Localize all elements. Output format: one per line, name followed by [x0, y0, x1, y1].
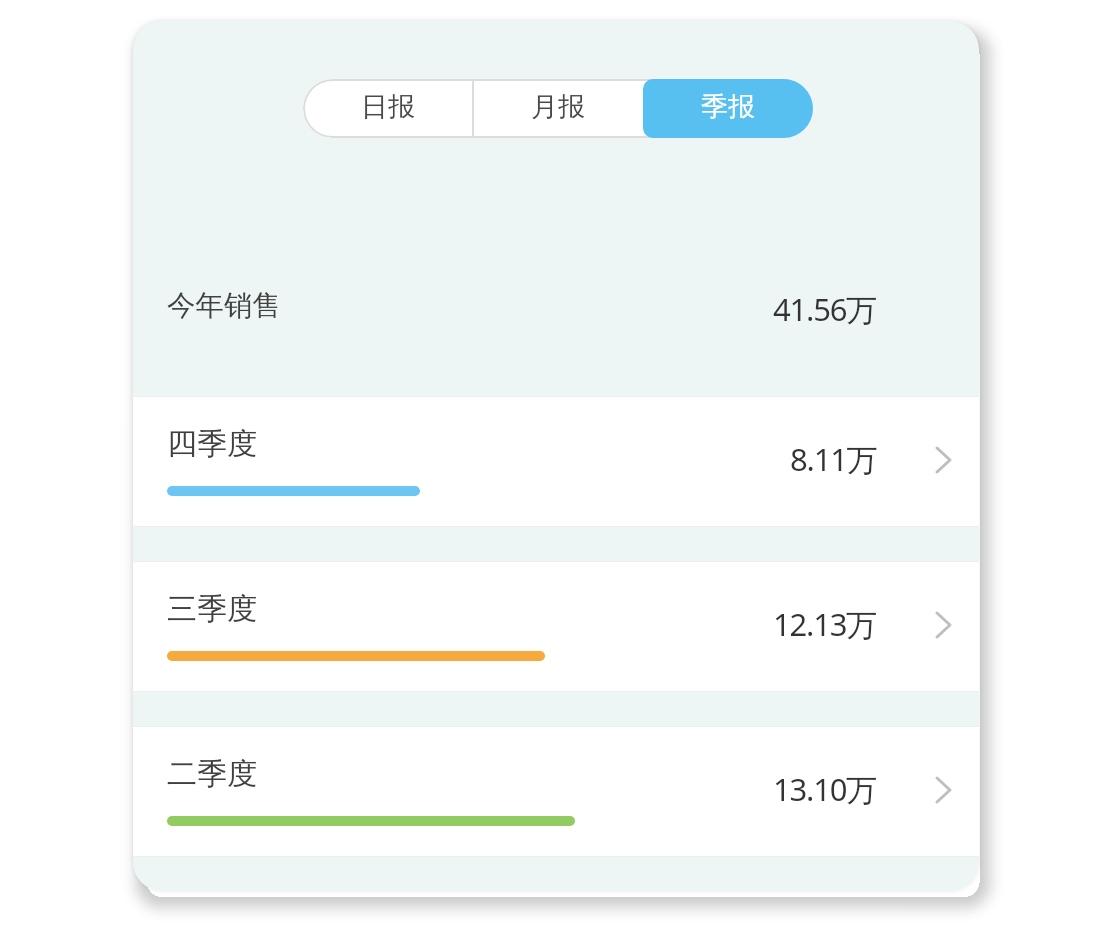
staticText: 41.56万	[773, 288, 877, 330]
button[interactable]: 四季度	[133, 396, 979, 527]
staticText: 四季度	[167, 425, 257, 463]
staticText: 二季度	[167, 755, 257, 793]
staticText: 日报	[361, 90, 415, 124]
staticText: 今年销售	[167, 288, 281, 324]
button[interactable]: 三季度	[133, 561, 979, 692]
button[interactable]: 日报	[303, 79, 473, 138]
button[interactable]: 二季度	[133, 726, 979, 857]
staticText: 季报	[701, 90, 755, 124]
staticText: 三季度	[167, 590, 257, 628]
staticText: 8.11万	[790, 438, 877, 480]
staticText: 12.13万	[773, 603, 877, 645]
button[interactable]: 季报	[643, 79, 813, 138]
staticText: 13.10万	[773, 768, 877, 810]
button[interactable]: 月报	[473, 79, 643, 138]
staticText: 月报	[531, 90, 585, 124]
